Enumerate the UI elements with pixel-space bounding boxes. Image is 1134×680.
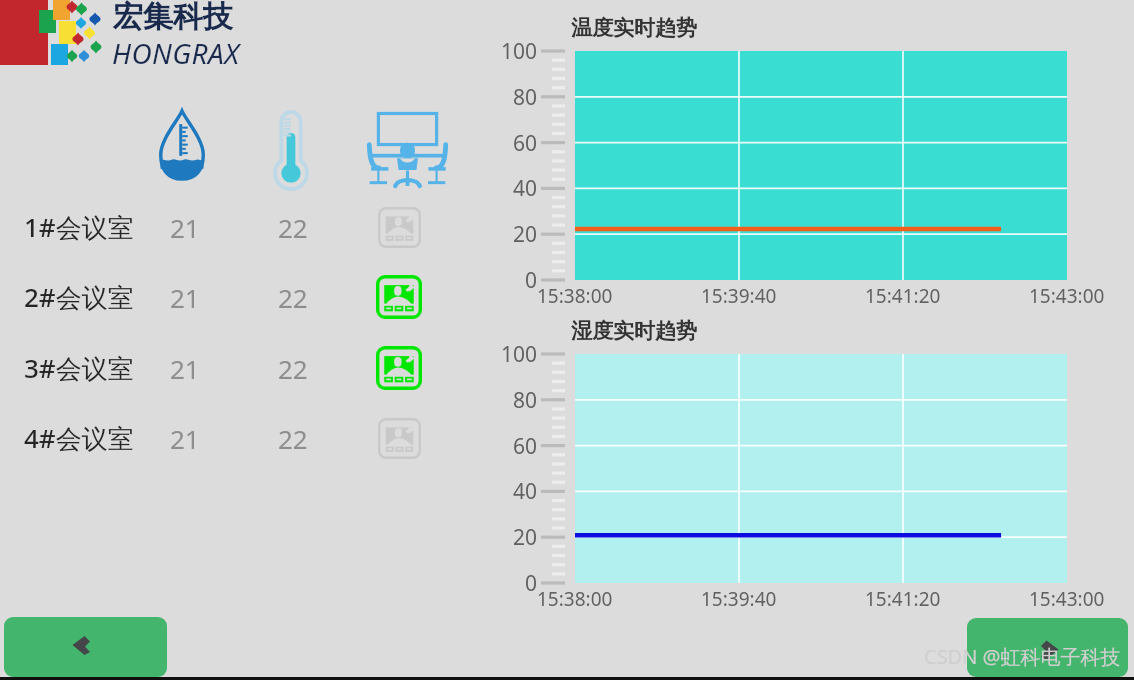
staticText: 15:38:00	[537, 283, 613, 309]
staticText: 21	[170, 421, 200, 456]
staticText: 15:43:00	[1029, 586, 1105, 612]
staticText: 20	[512, 220, 537, 249]
staticText: 22	[278, 210, 308, 245]
staticText: 4#会议室	[24, 420, 134, 456]
staticText: 15:41:20	[865, 586, 941, 612]
button[interactable]: Meeting room occupancy	[362, 112, 453, 186]
staticText: HONGRAX	[112, 34, 240, 72]
staticText: 湿度实时趋势	[571, 318, 697, 344]
other: HONGRAX logo	[0, 0, 110, 70]
staticText: 15:43:00	[1029, 283, 1105, 309]
staticText: CSDN @虹科电子科技	[924, 643, 1121, 670]
staticText: 80	[512, 83, 537, 112]
staticText: 21	[170, 210, 200, 245]
staticText: 15:39:40	[701, 586, 777, 612]
staticText: 2#会议室	[24, 279, 134, 315]
staticText: 100	[500, 37, 537, 66]
staticText: 15:41:20	[865, 283, 941, 309]
staticText: 60	[512, 432, 537, 461]
staticText: 21	[170, 351, 200, 386]
button[interactable]: 1#会议室	[0, 198, 470, 256]
button[interactable]: Back	[4, 617, 167, 677]
button[interactable]: 4#会议室	[0, 409, 470, 467]
staticText: 80	[512, 386, 537, 415]
staticText: 22	[278, 280, 308, 315]
staticText: 21	[170, 280, 200, 315]
staticText: 3#会议室	[24, 350, 134, 386]
staticText: 20	[512, 523, 537, 552]
button[interactable]: Forward	[967, 618, 1128, 677]
staticText: 100	[500, 340, 537, 369]
staticText: 0	[524, 569, 537, 598]
staticText: 0	[524, 266, 537, 295]
staticText: 15:39:40	[701, 283, 777, 309]
staticText: 15:38:00	[537, 586, 613, 612]
button[interactable]: Temperature	[268, 110, 314, 191]
button[interactable]: 3#会议室	[0, 339, 470, 397]
staticText: 宏集科技	[113, 0, 233, 36]
staticText: 1#会议室	[24, 209, 134, 245]
staticText: 40	[512, 477, 537, 506]
staticText: 22	[278, 351, 308, 386]
button[interactable]: Humidity	[159, 109, 205, 181]
staticText: 60	[512, 129, 537, 158]
staticText: 温度实时趋势	[571, 15, 697, 41]
staticText: 40	[512, 174, 537, 203]
staticText: 22	[278, 421, 308, 456]
button[interactable]: 2#会议室	[0, 268, 470, 326]
